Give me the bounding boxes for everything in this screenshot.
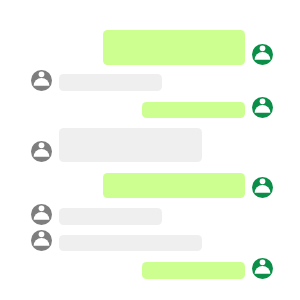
button[interactable]: Sent message: [103, 30, 245, 65]
button[interactable]: Your profile picture: [252, 177, 273, 198]
button[interactable]: Your profile picture: [252, 44, 273, 65]
button[interactable]: Contact profile picture: [31, 204, 52, 225]
button[interactable]: Contact profile picture: [31, 70, 52, 91]
button[interactable]: Contact profile picture: [31, 141, 52, 162]
button[interactable]: Contact profile picture: [31, 230, 52, 251]
button[interactable]: Sent message: [142, 102, 245, 118]
button[interactable]: Sent message: [103, 173, 245, 198]
button[interactable]: Your profile picture: [252, 258, 273, 279]
button[interactable]: Your profile picture: [252, 97, 273, 118]
button[interactable]: Sent message: [142, 262, 245, 279]
